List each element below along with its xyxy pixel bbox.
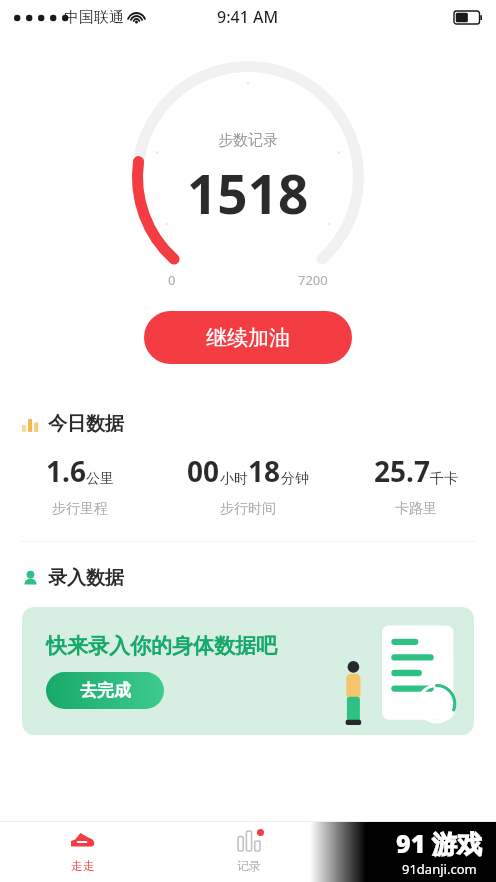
staticText: 步行时间 bbox=[220, 500, 276, 518]
button[interactable]: 快来录入你的身体数据吧 bbox=[22, 607, 474, 735]
button[interactable]: 继续加油 bbox=[144, 311, 352, 364]
staticText: 步行里程 bbox=[52, 500, 108, 518]
staticText: 录入数据 bbox=[48, 566, 124, 590]
staticText: 走走 bbox=[71, 858, 95, 873]
staticText: 继续加油 bbox=[206, 325, 290, 351]
staticText: 小时 bbox=[220, 470, 248, 488]
button[interactable]: 走走 bbox=[0, 822, 166, 882]
staticText: 中国联通 bbox=[64, 8, 124, 27]
staticText: 91 游戏 bbox=[396, 826, 482, 860]
staticText: 00 bbox=[187, 452, 220, 490]
staticText: 9:41 AM bbox=[217, 6, 279, 28]
staticText: 18 bbox=[248, 452, 281, 490]
staticText: 0 bbox=[168, 271, 176, 289]
staticText: 91danji.com bbox=[402, 860, 477, 878]
staticText: 千卡 bbox=[430, 470, 458, 488]
button[interactable]: 去完成 bbox=[46, 672, 164, 709]
staticText: 1518 bbox=[187, 157, 309, 229]
staticText: 卡路里 bbox=[395, 500, 437, 518]
staticText: 去完成 bbox=[80, 680, 131, 701]
staticText: 1.6 bbox=[46, 452, 86, 490]
staticText: 7200 bbox=[298, 271, 328, 289]
staticText: 今日数据 bbox=[48, 412, 124, 436]
staticText: 记录 bbox=[237, 858, 261, 873]
staticText: 步数记录 bbox=[218, 131, 278, 150]
button[interactable]: 记录 bbox=[166, 822, 331, 882]
staticText: 分钟 bbox=[281, 470, 309, 488]
staticText: 25.7 bbox=[374, 452, 430, 490]
staticText: 公里 bbox=[86, 470, 114, 488]
staticText: 快来录入你的身体数据吧 bbox=[46, 633, 277, 659]
